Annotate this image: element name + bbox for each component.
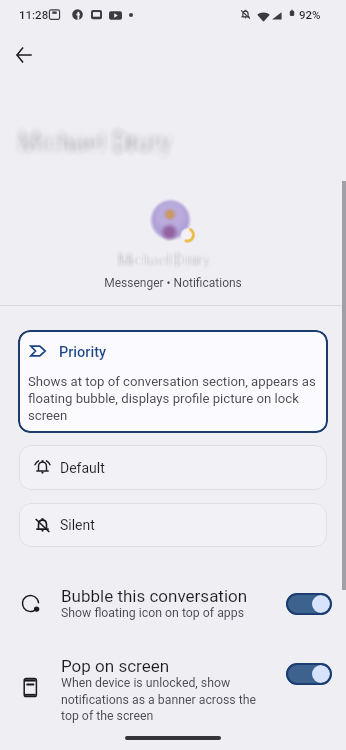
staticText: Michael Drury: [20, 130, 174, 159]
staticText: Michael Drury: [123, 254, 215, 272]
staticText: Michael Drury: [17, 135, 171, 164]
staticText: Michael Drury: [14, 128, 168, 157]
staticText: Michael Drury: [16, 127, 170, 156]
staticText: Michael Drury: [114, 250, 206, 268]
staticText: Michael Drury: [14, 136, 168, 165]
staticText: Michael Drury: [21, 136, 175, 165]
staticText: Michael Drury: [19, 134, 173, 163]
staticText: Michael Drury: [19, 122, 173, 151]
staticText: Michael Drury: [117, 256, 209, 274]
staticText: Michael Drury: [22, 120, 176, 149]
staticText: Michael Drury: [9, 133, 163, 162]
staticText: Michael Drury: [113, 255, 205, 273]
staticText: Michael Drury: [11, 126, 165, 155]
staticText: Michael Drury: [12, 132, 166, 161]
staticText: Michael Drury: [20, 121, 174, 150]
staticText: Michael Drury: [123, 249, 215, 267]
staticText: Default: [60, 460, 105, 476]
staticText: Michael Drury: [15, 125, 169, 154]
staticText: Michael Drury: [14, 130, 168, 159]
staticText: Michael Drury: [117, 253, 209, 271]
staticText: Michael Drury: [121, 253, 213, 271]
staticText: Michael Drury: [9, 134, 163, 163]
staticText: Michael Drury: [25, 135, 179, 164]
staticText: Michael Drury: [22, 125, 176, 154]
staticText: Michael Drury: [119, 256, 211, 274]
staticText: Michael Drury: [11, 132, 165, 161]
staticText: Michael Drury: [119, 255, 211, 273]
button[interactable]: Bubble this conversation: [0, 583, 346, 605]
button[interactable]: Pop on screen: [0, 653, 346, 700]
button[interactable]: Default: [19, 445, 327, 490]
staticText: Michael Drury: [116, 252, 208, 270]
staticText: Michael Drury: [11, 120, 165, 149]
staticText: Michael Drury: [116, 251, 208, 269]
staticText: Michael Drury: [117, 247, 209, 265]
staticText: Michael Drury: [117, 250, 209, 268]
staticText: Michael Drury: [118, 247, 210, 265]
staticText: Michael Drury: [123, 250, 215, 268]
staticText: Michael Drury: [122, 253, 214, 271]
staticText: Michael Drury: [114, 254, 206, 272]
staticText: Michael Drury: [20, 125, 174, 154]
button[interactable]: Silent: [19, 503, 327, 547]
staticText: Michael Drury: [17, 134, 171, 163]
staticText: Michael Drury: [25, 137, 179, 166]
staticText: Michael Drury: [21, 124, 175, 153]
staticText: Michael Drury: [10, 128, 164, 157]
staticText: Michael Drury: [120, 249, 212, 267]
staticText: Michael Drury: [17, 136, 171, 165]
staticText: Michael Drury: [19, 128, 173, 157]
staticText: Michael Drury: [20, 119, 174, 148]
staticText: Michael Drury: [18, 136, 172, 165]
staticText: Michael Drury: [117, 252, 209, 270]
staticText: Michael Drury: [122, 256, 214, 274]
staticText: Michael Drury: [17, 137, 171, 166]
staticText: Michael Drury: [119, 253, 211, 271]
staticText: Michael Drury: [22, 136, 176, 165]
staticText: Michael Drury: [119, 253, 211, 271]
staticText: Michael Drury: [9, 126, 163, 155]
staticText: Michael Drury: [114, 254, 206, 272]
staticText: Michael Drury: [16, 133, 170, 162]
staticText: Michael Drury: [16, 134, 170, 163]
staticText: Michael Drury: [114, 247, 206, 265]
staticText: Michael Drury: [120, 247, 212, 265]
staticText: Michael Drury: [123, 252, 215, 270]
staticText: Michael Drury: [18, 130, 172, 159]
staticText: Michael Drury: [118, 252, 210, 270]
staticText: Michael Drury: [9, 128, 163, 157]
staticText: Michael Drury: [23, 123, 177, 152]
staticText: Michael Drury: [118, 245, 210, 263]
staticText: Michael Drury: [120, 256, 212, 274]
staticText: Michael Drury: [10, 133, 164, 162]
staticText: Michael Drury: [20, 133, 174, 162]
button[interactable]: Priority: [18, 330, 328, 433]
staticText: Michael Drury: [115, 249, 207, 267]
staticText: Michael Drury: [117, 249, 209, 267]
staticText: Michael Drury: [16, 119, 170, 148]
staticText: Michael Drury: [19, 133, 173, 162]
staticText: Michael Drury: [115, 255, 207, 273]
staticText: Michael Drury: [11, 124, 165, 153]
staticText: Michael Drury: [17, 120, 171, 149]
staticText: Michael Drury: [16, 126, 170, 155]
staticText: Michael Drury: [21, 133, 175, 162]
staticText: Michael Drury: [13, 129, 167, 158]
staticText: Michael Drury: [15, 121, 169, 150]
staticText: Michael Drury: [117, 246, 209, 264]
staticText: Michael Drury: [118, 253, 210, 271]
button[interactable]: Pop on screen: [286, 663, 332, 685]
button[interactable]: Bubble this conversation: [286, 593, 332, 615]
staticText: Michael Drury: [116, 250, 208, 268]
staticText: Michael Drury: [10, 136, 164, 165]
staticText: Michael Drury: [120, 246, 212, 264]
staticText: Michael Drury: [21, 132, 175, 161]
staticText: Michael Drury: [17, 125, 171, 154]
staticText: Michael Drury: [26, 119, 180, 148]
staticText: Michael Drury: [10, 137, 164, 166]
button[interactable]: Back: [5, 36, 43, 74]
staticText: Michael Drury: [115, 252, 207, 270]
staticText: Michael Drury: [117, 253, 209, 271]
staticText: Michael Drury: [21, 121, 175, 150]
